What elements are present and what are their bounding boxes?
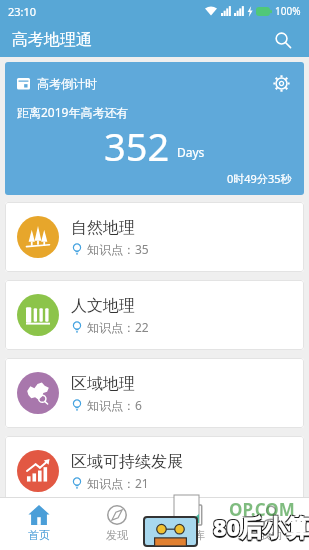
button[interactable]: 自然地理 xyxy=(5,202,304,272)
staticText: 23:10 xyxy=(8,4,37,19)
staticText: 知识点：35 xyxy=(87,241,149,257)
button[interactable]: 区域地理 xyxy=(5,358,304,428)
staticText: 80后小算 xyxy=(214,512,309,543)
staticText: 352 xyxy=(104,120,170,167)
staticText: 80后小算 xyxy=(213,511,309,542)
button[interactable]: 高考倒计时 xyxy=(5,62,304,195)
staticText: 0时49分35秒 xyxy=(227,171,292,186)
staticText: OP.COM xyxy=(229,498,295,521)
staticText: 高考地理通 xyxy=(12,30,92,50)
button[interactable]: 发现 xyxy=(78,498,155,550)
staticText: 80后小算 xyxy=(212,510,308,541)
button[interactable]: 我的 xyxy=(232,498,309,550)
staticText: 人文地理 xyxy=(71,296,135,316)
staticText: 题库 xyxy=(183,528,205,542)
button[interactable] xyxy=(269,26,297,54)
staticText: Days xyxy=(177,144,205,160)
staticText: 知识点：6 xyxy=(87,397,142,413)
staticText: 高考倒计时 xyxy=(37,76,97,91)
button[interactable]: 人文地理 xyxy=(5,280,304,350)
staticText: 知识点：22 xyxy=(87,319,149,335)
staticText: 发现 xyxy=(106,528,128,542)
button[interactable] xyxy=(270,72,292,94)
staticText: 区域可持续发展 xyxy=(71,452,183,472)
staticText: 80后小算 xyxy=(214,510,309,541)
staticText: 80后小算 xyxy=(212,512,308,543)
staticText: 区域地理 xyxy=(71,374,135,394)
button[interactable]: 区域可持续发展 xyxy=(5,436,304,506)
staticText: 首页 xyxy=(28,528,50,542)
button[interactable]: 首页 xyxy=(0,498,78,550)
staticText: 自然地理 xyxy=(71,218,135,238)
button[interactable]: 题库 xyxy=(155,498,232,550)
staticText: 距离2019年高考还有 xyxy=(17,104,129,120)
staticText: 我的 xyxy=(260,528,282,542)
staticText: 知识点：21 xyxy=(87,475,149,491)
staticText: 80后小算 xyxy=(213,513,309,544)
staticText: 100% xyxy=(275,4,301,18)
